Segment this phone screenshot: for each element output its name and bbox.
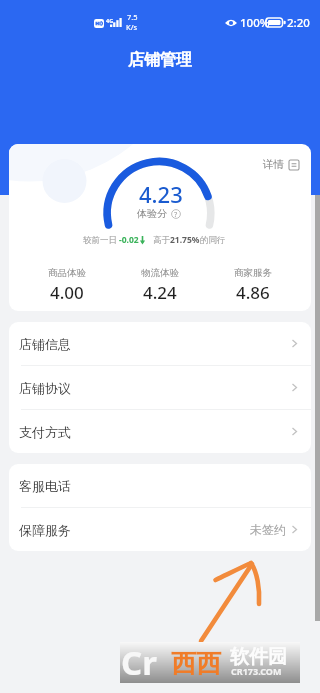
staticText: 商家服务 — [234, 267, 272, 279]
staticText: 保障服务 — [19, 522, 71, 538]
button[interactable]: 客服电话 — [9, 464, 311, 507]
staticText: 未签约 — [250, 522, 286, 537]
staticText: 支付方式 — [19, 424, 71, 440]
staticText: 详情 — [263, 158, 284, 171]
staticText: 4.00 — [50, 281, 84, 304]
staticText: 西西 — [171, 648, 221, 679]
staticText: 店铺管理 — [128, 50, 192, 70]
staticText: 店铺信息 — [19, 336, 71, 352]
button[interactable]: 店铺信息 — [9, 322, 311, 365]
staticText: 4.23 — [139, 179, 183, 209]
button[interactable]: 详情 — [257, 153, 305, 176]
staticText: 2:20 — [287, 15, 310, 31]
staticText: 较前一日 — [83, 235, 117, 246]
staticText: 体验分 — [137, 207, 167, 220]
staticText: 店铺协议 — [19, 380, 71, 396]
staticText: ? — [174, 209, 178, 219]
staticText: 4G — [106, 17, 114, 24]
staticText: 的同行 — [200, 235, 226, 246]
staticText: 4.86 — [236, 281, 270, 304]
staticText: 21.75% — [170, 234, 200, 246]
staticText: 软件园 — [230, 645, 287, 669]
staticText: K/s — [126, 22, 138, 32]
staticText: 100% — [240, 15, 270, 31]
staticText: 商品体验 — [48, 267, 86, 279]
staticText: -0.02 — [119, 234, 139, 246]
staticText: 物流体验 — [141, 267, 179, 279]
staticText: Cr — [121, 640, 157, 685]
button[interactable]: 保障服务 — [9, 508, 311, 551]
staticText: 7.5 — [127, 12, 138, 22]
button[interactable]: 支付方式 — [9, 410, 311, 453]
staticText: 高于 — [153, 235, 170, 246]
staticText: 客服电话 — [19, 478, 71, 494]
button[interactable]: 店铺协议 — [9, 366, 311, 409]
staticText: 4.24 — [143, 281, 177, 304]
staticText: CR173.COM — [231, 665, 282, 677]
